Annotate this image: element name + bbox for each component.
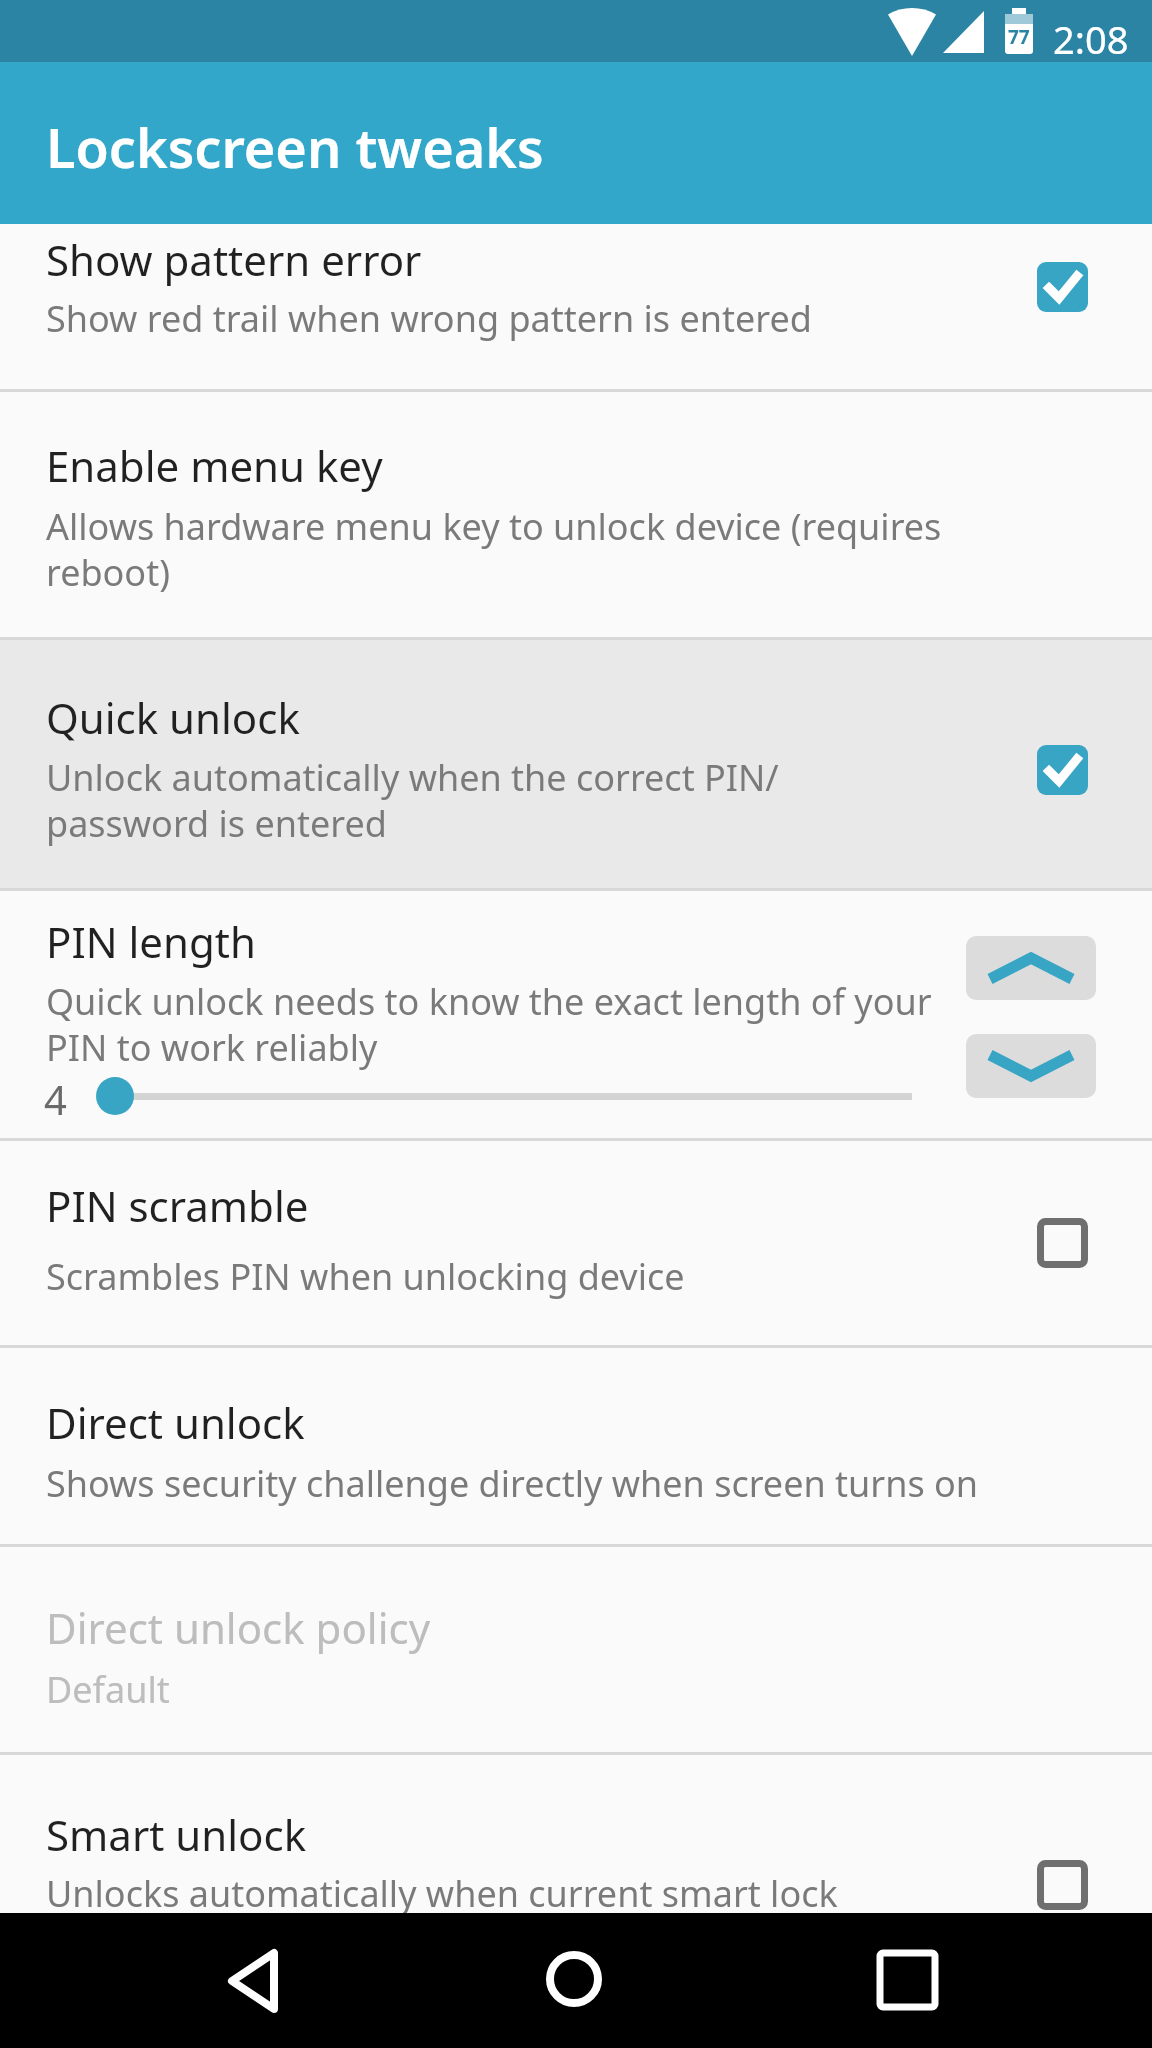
button[interactable] [1037,1860,1088,1910]
staticText: Default [46,1665,170,1714]
staticText: Lockscreen tweaks [46,110,544,184]
staticText: Unlock automatically when the correct PI… [46,753,779,848]
staticText: Smart unlock [46,1806,307,1863]
staticText: 77 [1008,24,1030,50]
button[interactable] [206,1931,306,2031]
button[interactable]: PIN scramble [0,1141,1152,1345]
staticText: Show pattern error [46,231,422,288]
staticText: Allows hardware menu key to unlock devic… [46,502,942,597]
staticText: Scrambles PIN when unlocking device [46,1252,685,1301]
staticText: PIN length [46,913,256,970]
button[interactable] [966,936,1096,1000]
staticText: Unlocks automatically when current smart… [46,1869,838,1913]
button[interactable]: Enable menu key [0,392,1152,637]
button[interactable]: Quick unlock [0,640,1152,888]
staticText: 2:08 [1053,13,1129,65]
button[interactable] [1037,262,1088,312]
staticText: Show red trail when wrong pattern is ent… [46,294,812,343]
staticText: Direct unlock policy [46,1599,431,1656]
staticText: PIN scramble [46,1177,309,1234]
staticText: Quick unlock [46,689,300,746]
button[interactable] [966,1034,1096,1098]
button[interactable]: Show pattern error [0,224,1152,389]
staticText: Quick unlock needs to know the exact len… [46,977,932,1072]
button[interactable]: Smart unlock [0,1755,1152,1913]
button[interactable]: Direct unlock [0,1348,1152,1544]
staticText: 4 [44,1072,67,1126]
button[interactable]: Direct unlock policy [0,1547,1152,1752]
staticText: Shows security challenge directly when s… [46,1459,979,1508]
button[interactable] [524,1929,624,2029]
staticText: Enable menu key [46,437,383,494]
button[interactable]: PIN length [0,891,1152,1138]
button[interactable] [1037,745,1088,795]
staticText: Direct unlock [46,1394,305,1451]
button[interactable] [852,1931,952,2031]
button[interactable] [1037,1218,1088,1268]
